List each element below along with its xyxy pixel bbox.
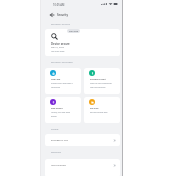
staticText: Last scan: today	[51, 50, 65, 52]
staticText: Encrypt private files	[90, 111, 112, 114]
staticText: Device secure	[51, 42, 70, 46]
button[interactable]: App Lock	[45, 68, 81, 94]
staticText: Locate, lock and wipe device	[51, 111, 73, 117]
button[interactable]: Emergency SOS	[45, 134, 120, 146]
staticText: Security	[57, 13, 69, 17]
staticText: Emergency SOS	[51, 139, 68, 142]
button[interactable]: Scan now	[45, 29, 120, 56]
staticText: SERVICES	[51, 151, 62, 154]
button[interactable]: Back	[48, 11, 56, 19]
staticText: SECURITY FEATURES	[51, 61, 73, 64]
staticText: Find Device	[51, 107, 63, 110]
button[interactable]: Scan now	[67, 29, 80, 33]
staticText: Password Vault	[90, 78, 106, 81]
staticText: More settings	[51, 164, 66, 167]
button[interactable]: More settings	[45, 159, 120, 176]
button[interactable]: Password Vault	[84, 68, 120, 94]
staticText: Scan now	[69, 30, 79, 33]
staticText: Store all your passwords safe and secure…	[90, 82, 112, 88]
staticText: Feb 15, 2024	[51, 46, 64, 49]
staticText: SECURITY STATUS	[51, 23, 70, 26]
staticText: Protect your apps with a secure pin	[51, 82, 73, 88]
button[interactable]: File Safe	[84, 97, 120, 123]
staticText: 10:05 AM	[53, 3, 65, 7]
staticText: OTHER	[51, 128, 59, 131]
staticText: File Safe	[90, 107, 99, 110]
button[interactable]: Find Device	[45, 97, 81, 123]
staticText: App Lock	[51, 78, 61, 81]
